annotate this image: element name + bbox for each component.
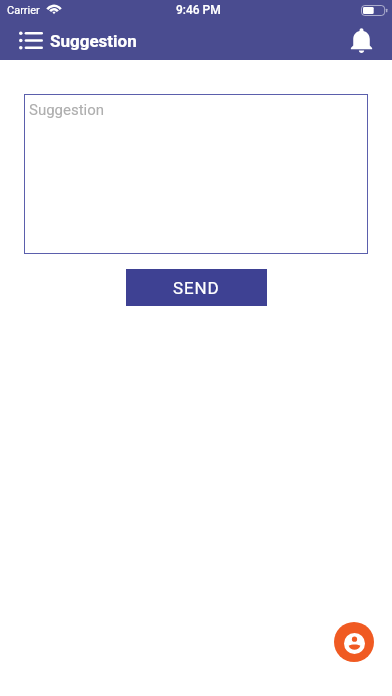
staticText: Suggestion [50,31,137,51]
button[interactable]: Suggestion [24,94,368,254]
staticText: SEND [173,278,220,298]
button[interactable]: Account [334,622,374,662]
staticText: Suggestion [29,101,105,119]
staticText: 9:46 PM [176,3,221,17]
button[interactable]: SEND [126,269,267,306]
button[interactable]: Notifications [347,27,375,55]
button[interactable]: Menu [19,31,43,51]
staticText: Carrier [7,4,40,17]
